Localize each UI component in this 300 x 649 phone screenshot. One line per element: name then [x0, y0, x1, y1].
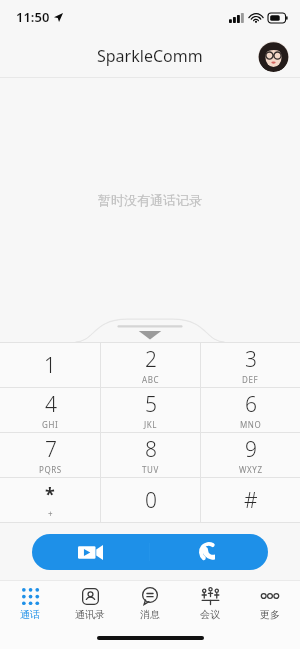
- staticText: WXYZ: [239, 464, 263, 475]
- staticText: #: [244, 486, 258, 515]
- staticText: JKL: [144, 419, 158, 430]
- staticText: 3: [245, 345, 257, 374]
- button[interactable]: 9: [201, 433, 300, 477]
- button[interactable]: Audio call: [150, 534, 268, 570]
- button[interactable]: *: [0, 478, 100, 522]
- button[interactable]: #: [201, 478, 300, 522]
- staticText: 8: [145, 435, 157, 464]
- staticText: 9: [245, 435, 257, 464]
- button[interactable]: 2: [101, 343, 200, 387]
- staticText: 消息: [140, 608, 160, 621]
- button[interactable]: 通讯录: [60, 580, 120, 627]
- button[interactable]: 4: [0, 388, 100, 432]
- staticText: GHI: [42, 419, 59, 430]
- staticText: 暂时没有通话记录: [98, 192, 202, 208]
- button[interactable]: 7: [0, 433, 100, 477]
- button[interactable]: Video call: [32, 534, 149, 570]
- staticText: SparkleComm: [97, 45, 203, 67]
- staticText: 0: [145, 486, 157, 515]
- staticText: PQRS: [39, 464, 62, 475]
- staticText: 4: [45, 390, 57, 419]
- staticText: 通讯录: [75, 608, 105, 621]
- staticText: 通话: [20, 608, 40, 621]
- button[interactable]: 3: [201, 343, 300, 387]
- button[interactable]: 0: [101, 478, 200, 522]
- button[interactable]: 6: [201, 388, 300, 432]
- button[interactable]: 消息: [120, 580, 180, 627]
- button[interactable]: 5: [101, 388, 200, 432]
- staticText: 会议: [200, 608, 220, 621]
- button[interactable]: Profile: [258, 41, 289, 72]
- staticText: 1: [44, 351, 56, 380]
- button[interactable]: Collapse: [0, 316, 300, 342]
- button[interactable]: 会议: [180, 580, 240, 627]
- staticText: TUV: [142, 464, 159, 475]
- button[interactable]: 更多: [240, 580, 300, 627]
- staticText: MNO: [240, 419, 262, 430]
- staticText: *: [45, 482, 55, 507]
- button[interactable]: 1: [0, 343, 100, 387]
- staticText: ABC: [142, 374, 160, 385]
- staticText: 11:50: [16, 8, 50, 26]
- staticText: DEF: [242, 374, 259, 385]
- button[interactable]: 通话: [0, 580, 60, 627]
- button[interactable]: 8: [101, 433, 200, 477]
- staticText: 5: [145, 390, 157, 419]
- staticText: 6: [245, 390, 257, 419]
- staticText: +: [48, 508, 53, 519]
- staticText: 7: [45, 435, 57, 464]
- staticText: 更多: [260, 608, 280, 621]
- staticText: 2: [145, 345, 157, 374]
